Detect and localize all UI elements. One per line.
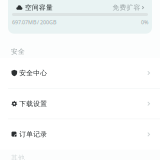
button[interactable]: 免费扩容 [113,3,144,12]
staticText: 697.07MB / 200GB [12,19,56,26]
staticText: 其他 [11,154,25,160]
staticText: 订单记录 [19,130,47,138]
button[interactable]: 订单记录 [0,119,160,149]
staticText: 空间容量 [25,3,53,12]
staticText: 下载设置 [19,100,47,108]
button[interactable]: 安全中心 [0,58,160,88]
button[interactable]: 下载设置 [0,89,160,119]
staticText: 0% [141,19,148,26]
staticText: 免费扩容 [113,3,141,12]
staticText: 安全中心 [19,69,47,77]
staticText: 安全 [11,47,25,56]
